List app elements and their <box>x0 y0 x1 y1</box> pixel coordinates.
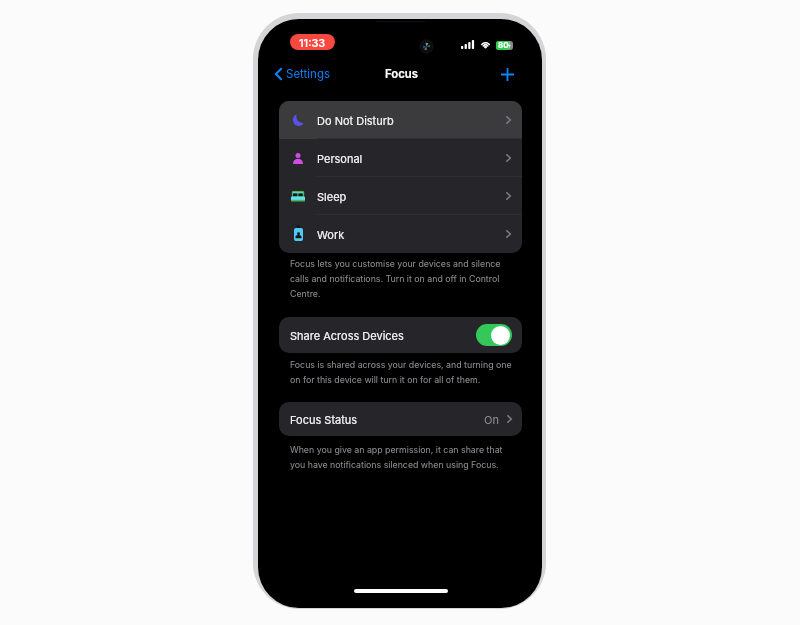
staticText: When you give an app permission, it can … <box>290 444 516 470</box>
staticText: Sleep <box>317 190 347 203</box>
staticText: Focus lets you customise your devices an… <box>290 258 516 299</box>
staticText: Personal <box>317 152 363 165</box>
button[interactable]: Do Not Disturb <box>279 101 522 139</box>
button[interactable]: Work <box>279 215 522 253</box>
button[interactable]: Add Focus <box>495 62 519 86</box>
button[interactable]: Focus Status <box>279 402 522 436</box>
staticText: Focus <box>385 67 418 81</box>
staticText: Focus Status <box>290 413 358 426</box>
staticText: Work <box>317 228 345 241</box>
button[interactable]: Share Across Devices <box>279 317 522 353</box>
staticText: Do Not Disturb <box>317 114 394 127</box>
button[interactable]: Sleep <box>279 177 522 215</box>
button[interactable]: Settings <box>275 67 331 81</box>
staticText: Focus is shared across your devices, and… <box>290 359 516 385</box>
staticText: 80 <box>498 40 509 50</box>
button[interactable]: Personal <box>279 139 522 177</box>
staticText: 11:33 <box>299 36 326 49</box>
staticText: Share Across Devices <box>290 329 404 342</box>
staticText: Settings <box>286 67 331 81</box>
staticText: On <box>484 413 499 426</box>
